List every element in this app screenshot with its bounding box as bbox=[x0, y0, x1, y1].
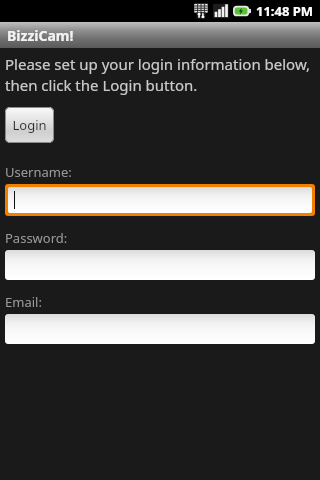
staticText: Please set up your login information bel… bbox=[5, 54, 315, 96]
staticText: Password: bbox=[5, 229, 68, 247]
staticText: Username: bbox=[5, 163, 72, 181]
staticText: Login bbox=[12, 116, 47, 134]
staticText: BizziCam! bbox=[7, 26, 74, 45]
button[interactable] bbox=[8, 187, 312, 213]
staticText: Email: bbox=[5, 293, 42, 311]
staticText: 11:48 PM bbox=[256, 2, 314, 20]
button[interactable]: Login bbox=[5, 107, 54, 143]
button[interactable] bbox=[5, 314, 315, 344]
button[interactable] bbox=[5, 250, 315, 280]
